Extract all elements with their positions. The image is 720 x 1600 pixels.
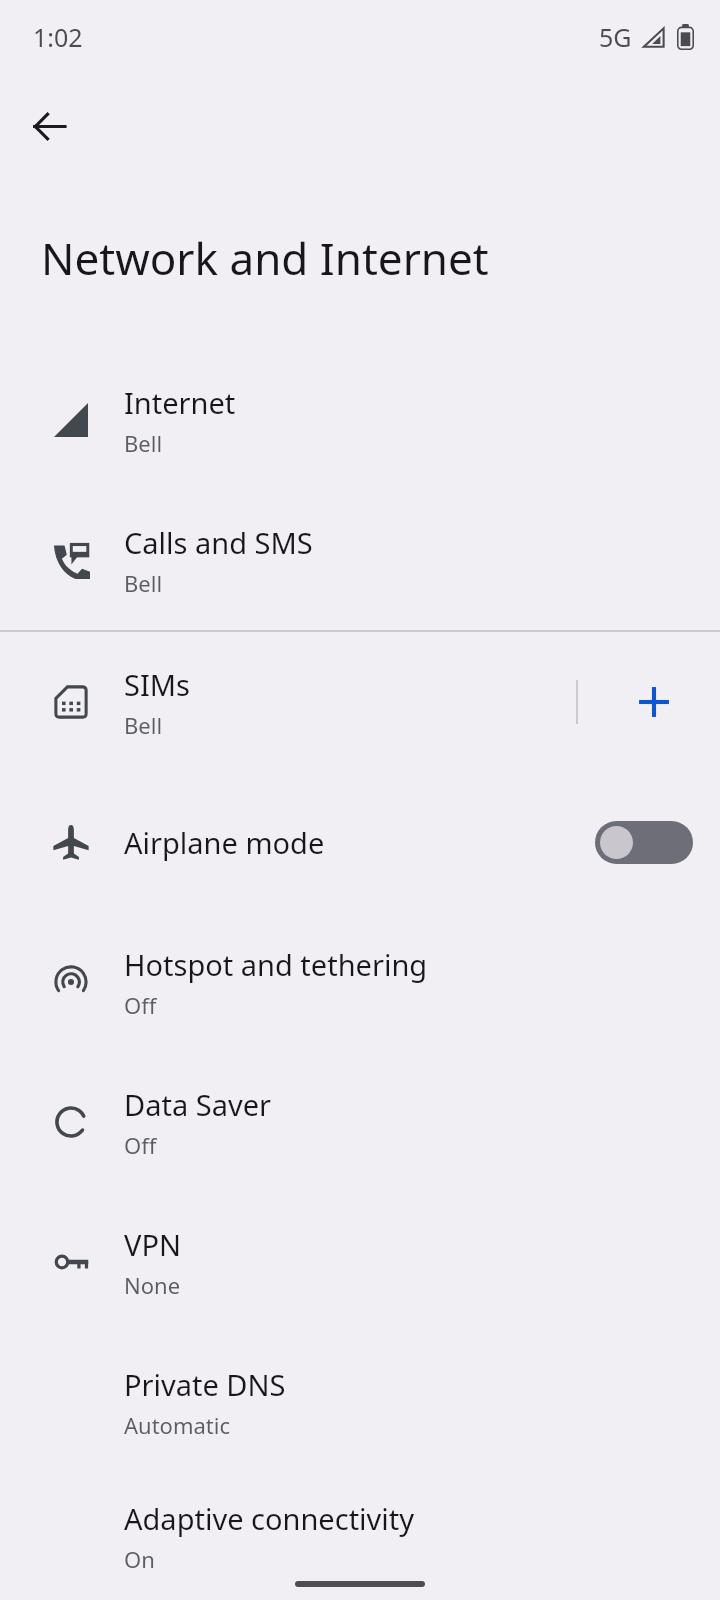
staticText: On	[124, 1544, 155, 1574]
staticText: Adaptive connectivity	[124, 1499, 415, 1538]
staticText: Airplane mode	[124, 823, 325, 862]
staticText: Calls and SMS	[124, 523, 313, 562]
button[interactable]: Calls and SMS	[0, 490, 720, 630]
button[interactable]: Hotspot and tethering	[0, 912, 720, 1052]
staticText: Bell	[124, 710, 163, 740]
button[interactable]: Airplane mode	[0, 772, 720, 912]
button[interactable]: Airplane mode	[568, 787, 720, 897]
button[interactable]: Private DNS	[0, 1332, 720, 1472]
staticText: Bell	[124, 568, 163, 598]
staticText: 5G	[599, 20, 632, 54]
staticText: Automatic	[124, 1410, 230, 1440]
staticText: Network and Internet	[41, 228, 489, 288]
staticText: Off	[124, 1130, 157, 1160]
button[interactable]: Add SIM	[588, 647, 720, 757]
staticText: VPN	[124, 1225, 181, 1264]
staticText: Off	[124, 990, 157, 1020]
button[interactable]: SIMs	[0, 632, 720, 772]
button[interactable]: Data Saver	[0, 1052, 720, 1192]
staticText: SIMs	[124, 665, 190, 704]
button[interactable]: Back	[12, 89, 86, 163]
staticText: Private DNS	[124, 1365, 286, 1404]
button[interactable]: VPN	[0, 1192, 720, 1332]
staticText: 1:02	[33, 20, 83, 54]
button[interactable]: Internet	[0, 350, 720, 490]
staticText: Hotspot and tethering	[124, 945, 428, 984]
staticText: Bell	[124, 428, 163, 458]
staticText: Data Saver	[124, 1085, 271, 1124]
staticText: Internet	[124, 383, 236, 422]
button[interactable]: Adaptive connectivity	[0, 1472, 720, 1600]
staticText: None	[124, 1270, 181, 1300]
